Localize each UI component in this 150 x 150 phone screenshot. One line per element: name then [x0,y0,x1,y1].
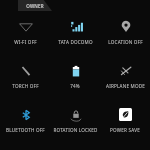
button[interactable]: TORCH OFF [0,60,50,95]
staticText: ROTATION LOCKED [53,127,98,133]
button[interactable]: AIRPLANE MODE [100,60,150,95]
staticText: AIRPLANE MODE [106,83,145,89]
button[interactable]: BLUETOOTH OFF [0,104,50,139]
button[interactable]: ROTATION LOCKED [50,104,100,139]
staticText: POWER SAVE [110,127,140,133]
staticText: 74% [70,83,80,89]
button[interactable]: POWER SAVE [100,104,150,139]
button[interactable]: 74% [50,60,100,95]
staticText: WI-FI OFF [14,39,37,45]
staticText: TORCH OFF [12,83,39,89]
button[interactable]: LOCATION OFF [100,16,150,51]
button[interactable]: OWNER [18,0,52,11]
staticText: BLUETOOTH OFF [6,127,45,133]
button[interactable]: TATA DOCOMO [50,16,100,51]
staticText: TATA DOCOMO [58,39,93,45]
staticText: OWNER [26,3,44,9]
staticText: LOCATION OFF [108,39,143,45]
button[interactable]: WI-FI OFF [0,16,50,51]
